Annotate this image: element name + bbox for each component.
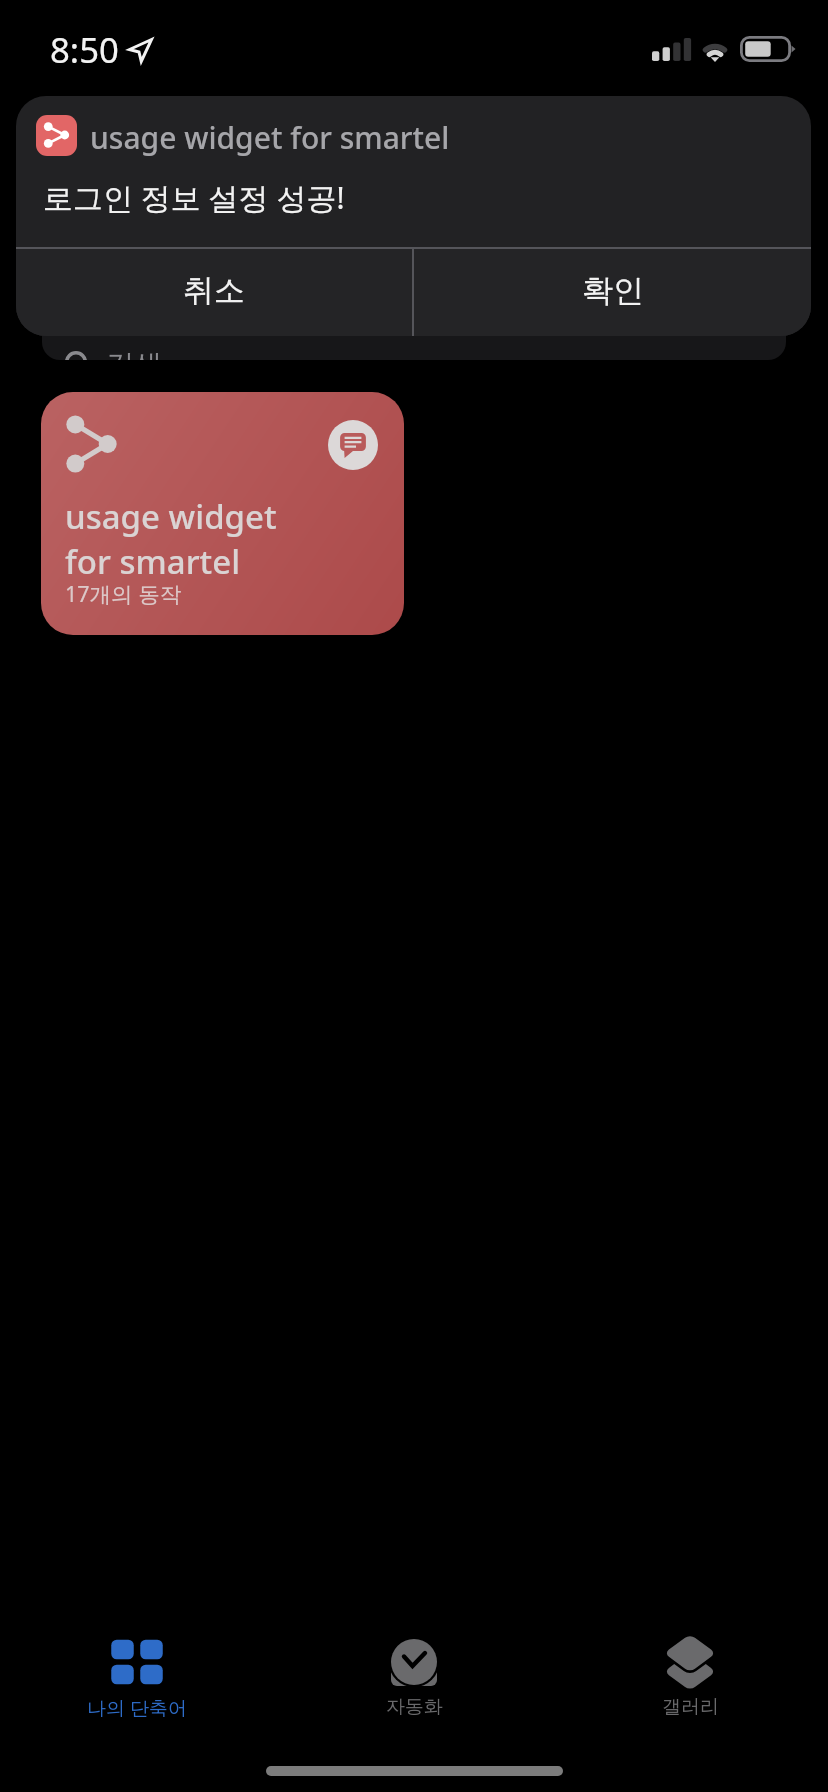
button[interactable]: 확인 (414, 249, 811, 336)
button[interactable]: 자동화 (314, 1602, 514, 1732)
staticText: 갤러리 (662, 1695, 719, 1719)
button[interactable]: usage widget for smartel (41, 392, 404, 635)
staticText: 확인 (582, 271, 644, 310)
button[interactable]: 나의 단축어 (37, 1602, 237, 1732)
staticText: 로그인 정보 설정 성공! (43, 177, 345, 218)
button[interactable]: 취소 (16, 249, 412, 336)
staticText: 17개의 동작 (65, 579, 182, 608)
staticText: usage widget for smartel (65, 494, 277, 583)
button[interactable]: 갤러리 (590, 1602, 790, 1732)
staticText: 8:50 (50, 27, 119, 73)
button[interactable]: 검색 (42, 278, 786, 360)
staticText: 취소 (183, 271, 245, 310)
staticText: 검색 (106, 347, 162, 360)
staticText: usage widget for smartel (90, 117, 450, 158)
staticText: 나의 단축어 (87, 1695, 187, 1721)
staticText: 자동화 (386, 1695, 443, 1719)
